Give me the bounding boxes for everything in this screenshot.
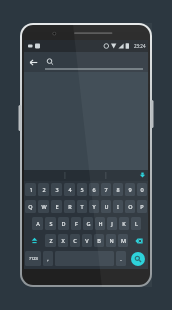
staticText: ,: [47, 255, 49, 262]
button[interactable]: Y: [89, 200, 99, 213]
button[interactable]: 2: [38, 183, 49, 196]
staticText: X: [61, 237, 65, 244]
button[interactable]: X: [58, 234, 68, 247]
button[interactable]: G: [83, 217, 93, 230]
staticText: 8: [116, 186, 120, 193]
button[interactable]: .: [116, 251, 126, 266]
staticText: C: [73, 237, 77, 244]
button[interactable]: C: [70, 234, 80, 247]
staticText: F: [75, 220, 78, 227]
button[interactable]: J: [107, 217, 117, 230]
staticText: Q: [28, 203, 33, 210]
button[interactable]: N: [106, 234, 116, 247]
button[interactable]: 5: [77, 183, 87, 196]
staticText: T: [80, 203, 84, 210]
button[interactable]: [45, 53, 143, 71]
button[interactable]: S: [45, 217, 56, 230]
button[interactable]: R: [64, 200, 75, 213]
staticText: Z: [49, 237, 53, 244]
button[interactable]: V: [82, 234, 92, 247]
staticText: W: [41, 203, 47, 210]
button[interactable]: E: [51, 200, 62, 213]
button[interactable]: L: [131, 217, 141, 230]
button[interactable]: D: [58, 217, 69, 230]
staticText: V: [85, 237, 89, 244]
staticText: 2: [42, 186, 46, 193]
button[interactable]: F: [71, 217, 81, 230]
staticText: Y: [92, 203, 96, 210]
button[interactable]: K: [119, 217, 129, 230]
button[interactable]: M: [118, 234, 128, 247]
staticText: J: [111, 220, 113, 227]
staticText: 0: [140, 186, 144, 193]
button[interactable]: 9: [125, 183, 135, 196]
button[interactable]: O: [125, 200, 135, 213]
button[interactable]: T: [77, 200, 87, 213]
staticText: 6: [92, 186, 96, 193]
button[interactable]: 3: [51, 183, 62, 196]
button[interactable]: Back: [24, 53, 42, 71]
staticText: I: [117, 203, 119, 210]
staticText: ?123: [29, 256, 38, 261]
staticText: G: [86, 220, 91, 227]
staticText: P: [140, 203, 144, 210]
staticText: A: [36, 220, 40, 227]
button[interactable]: U: [101, 200, 111, 213]
staticText: .: [120, 255, 122, 262]
staticText: L: [135, 220, 138, 227]
button[interactable]: 7: [101, 183, 111, 196]
staticText: H: [98, 220, 103, 227]
staticText: 7: [104, 186, 108, 193]
button[interactable]: A: [32, 217, 43, 230]
button[interactable]: W: [38, 200, 49, 213]
staticText: 4: [68, 186, 72, 193]
staticText: U: [104, 203, 109, 210]
staticText: 1: [29, 186, 33, 193]
staticText: B: [97, 237, 101, 244]
button[interactable]: Backspace: [130, 234, 147, 247]
button[interactable]: 1: [25, 183, 36, 196]
button[interactable]: I: [113, 200, 123, 213]
button[interactable]: Hide keyboard: [137, 170, 148, 181]
button[interactable]: Q: [25, 200, 36, 213]
button[interactable]: Search: [127, 249, 148, 268]
button[interactable]: ?123: [25, 251, 41, 266]
staticText: N: [109, 237, 114, 244]
button[interactable]: ,: [43, 251, 53, 266]
button[interactable]: 0: [137, 183, 147, 196]
staticText: M: [121, 237, 126, 244]
button[interactable]: Shift: [25, 234, 43, 247]
button[interactable]: P: [137, 200, 147, 213]
staticText: 9: [128, 186, 132, 193]
staticText: E: [55, 203, 59, 210]
staticText: D: [61, 220, 66, 227]
button[interactable]: [55, 251, 114, 266]
staticText: 5: [80, 186, 84, 193]
button[interactable]: 4: [64, 183, 75, 196]
button[interactable]: 6: [89, 183, 99, 196]
button[interactable]: Z: [45, 234, 56, 247]
staticText: 23:24: [134, 43, 146, 49]
staticText: 3: [55, 186, 59, 193]
staticText: K: [122, 220, 126, 227]
staticText: R: [68, 203, 72, 210]
button[interactable]: 8: [113, 183, 123, 196]
button[interactable]: B: [94, 234, 104, 247]
button[interactable]: H: [95, 217, 105, 230]
staticText: S: [49, 220, 53, 227]
staticText: O: [128, 203, 133, 210]
